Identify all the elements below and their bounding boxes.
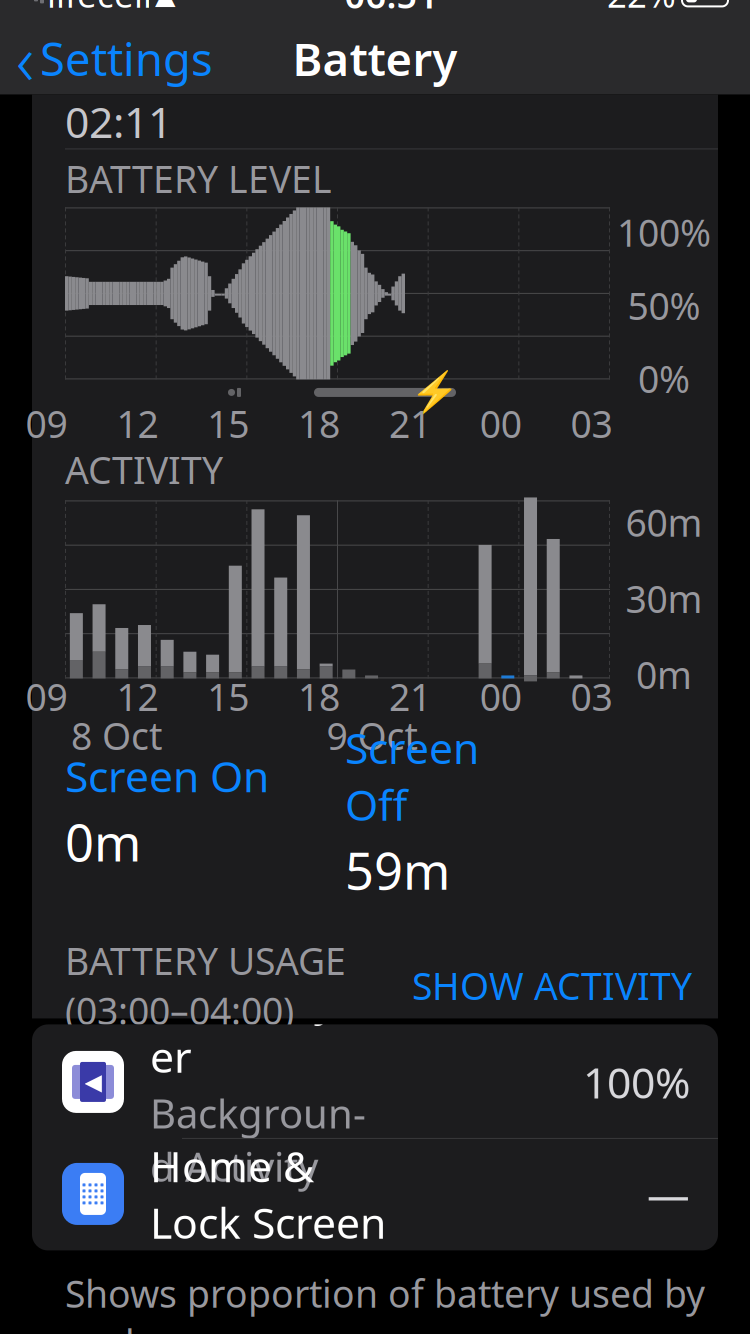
staticText: Home & Lock Screen bbox=[150, 1137, 386, 1251]
staticText: 59m bbox=[345, 836, 450, 904]
staticText: 22% bbox=[607, 0, 676, 17]
staticText: 50% bbox=[627, 281, 700, 330]
staticText: BATTERY LEVEL bbox=[65, 154, 332, 203]
staticText: lifecell bbox=[47, 0, 152, 17]
staticText: — bbox=[647, 1166, 690, 1222]
staticText: Background Activity bbox=[150, 1086, 366, 1193]
staticText: SHOW ACTIVITY bbox=[412, 961, 692, 1010]
staticText: 03 bbox=[571, 672, 613, 721]
staticText: 21 bbox=[389, 672, 431, 721]
staticText: 03 bbox=[571, 399, 613, 448]
staticText: 0m bbox=[65, 808, 141, 875]
staticText: 09 bbox=[26, 672, 68, 721]
staticText: 02:11 bbox=[65, 93, 172, 150]
staticText: 100% bbox=[583, 1054, 690, 1110]
staticText: 15 bbox=[207, 399, 249, 448]
staticText: 12 bbox=[116, 672, 158, 721]
staticText: Shows proportion of battery used by each… bbox=[65, 1268, 705, 1334]
staticText: 12 bbox=[116, 399, 158, 448]
staticText: 00 bbox=[480, 399, 522, 448]
staticText: ‹ bbox=[16, 12, 34, 104]
staticText: ACTIVITY bbox=[65, 445, 223, 494]
staticText: 06:51 bbox=[344, 0, 438, 18]
staticText: BATTERY USAGE (03:00–04:00) bbox=[65, 936, 346, 1035]
staticText: 8 Oct bbox=[71, 711, 162, 760]
staticText: BookPlayer bbox=[150, 971, 350, 1084]
staticText: 30m bbox=[625, 574, 702, 623]
staticText: Screen Off bbox=[345, 719, 479, 832]
staticText: 0m bbox=[636, 650, 692, 699]
staticText: 0% bbox=[638, 354, 690, 403]
staticText: 00 bbox=[480, 672, 522, 721]
staticText: Settings bbox=[40, 28, 213, 88]
staticText: 9 Oct bbox=[326, 711, 417, 760]
staticText: Battery bbox=[292, 28, 457, 88]
staticText: 09 bbox=[26, 399, 68, 448]
staticText: ▲ bbox=[155, 0, 176, 10]
staticText: 18 bbox=[298, 672, 340, 721]
button[interactable]: ◀ bbox=[32, 1026, 718, 1138]
staticText: Screen On bbox=[65, 747, 269, 804]
button[interactable]: SHOW ACTIVITY bbox=[412, 953, 692, 1018]
staticText: ⚡ bbox=[410, 370, 460, 415]
staticText: 60m bbox=[625, 497, 702, 547]
button[interactable]: Home & Lock Screen bbox=[32, 1139, 718, 1249]
button[interactable]: ‹ bbox=[0, 22, 229, 94]
staticText: 15 bbox=[207, 672, 249, 721]
staticText: 21 bbox=[389, 399, 431, 448]
staticText: 100% bbox=[617, 207, 711, 257]
staticText: 18 bbox=[298, 399, 340, 448]
staticText: ◀ bbox=[84, 1069, 101, 1095]
